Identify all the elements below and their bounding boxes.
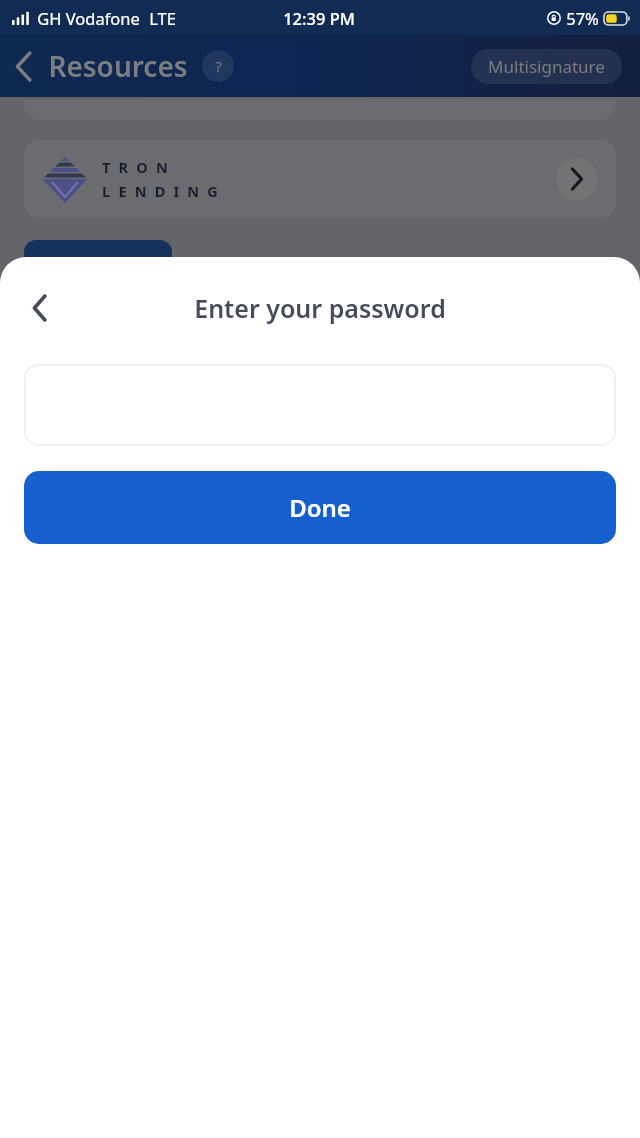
button[interactable]: T R O N [24,140,616,218]
staticText: LTE [149,7,176,29]
button[interactable] [24,364,616,446]
staticText: T R O N [102,157,170,177]
button[interactable]: Multisignature [471,49,622,84]
button[interactable]: Back [0,42,48,90]
staticText: 57% [566,7,599,29]
staticText: L E N D I N G [102,181,220,201]
staticText: Done [289,491,351,524]
button[interactable]: Done [24,471,616,544]
staticText: Resources [48,47,188,85]
staticText: Enter your password [194,291,446,325]
staticText: ? [215,56,222,76]
staticText: 12:39 PM [283,7,355,29]
button[interactable]: Help [202,50,234,82]
button[interactable]: Back [18,286,62,330]
staticText: GH Vodafone [37,7,140,29]
staticText: Multisignature [488,55,605,78]
